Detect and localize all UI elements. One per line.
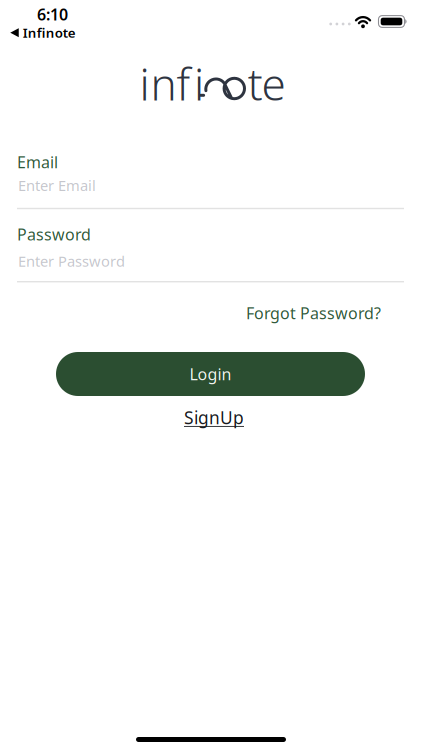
staticText: Email [17,151,58,172]
staticText: 6:10 [37,4,68,25]
staticText: Login [189,363,231,385]
staticText: Enter Password [18,251,125,271]
button[interactable]: SignUp [184,406,244,429]
button[interactable]: Back to Infinote [10,24,76,41]
staticText: e [261,54,285,112]
button[interactable]: Forgot Password? [246,302,381,324]
staticText: Forgot Password? [246,302,381,324]
staticText: Password [17,224,91,245]
staticText: t [248,54,263,112]
button[interactable]: Enter Password [17,246,404,282]
staticText: SignUp [184,406,244,429]
button[interactable]: Login [56,352,365,396]
button[interactable]: Enter Email [17,173,404,209]
staticText: Enter Email [18,175,96,195]
staticText: n [150,54,176,112]
staticText: Infinote [23,24,76,41]
staticText: i [194,54,204,112]
staticText: f [176,54,190,112]
staticText: i [139,54,149,112]
